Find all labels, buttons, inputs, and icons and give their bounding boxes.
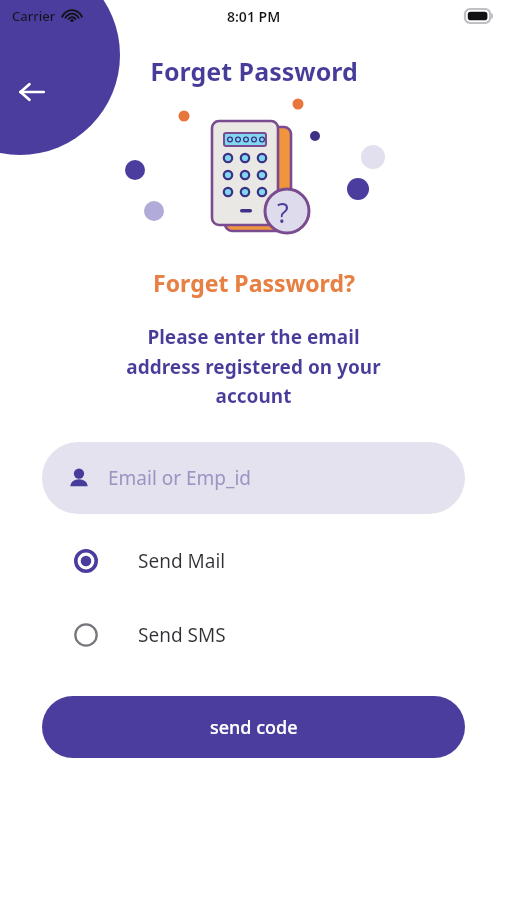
staticText: Email or Emp_id [108,465,252,491]
button[interactable]: Back [10,70,54,114]
staticText: Send Mail [138,548,226,574]
staticText: Forget Password? [153,267,355,298]
staticText: Please enter the email address registere… [40,324,467,408]
staticText: Forget Password [150,54,358,88]
staticText: Send SMS [138,622,226,648]
staticText: ? [277,194,289,231]
button[interactable]: send code [42,696,465,758]
staticText: send code [210,715,298,740]
other: Back [0,0,507,900]
button[interactable]: Send SMS [42,612,465,658]
staticText: 8:01 PM [227,7,281,26]
staticText: Carrier [12,7,56,25]
button[interactable]: Email or Emp_id [42,442,465,514]
button[interactable]: Send Mail [42,538,465,584]
